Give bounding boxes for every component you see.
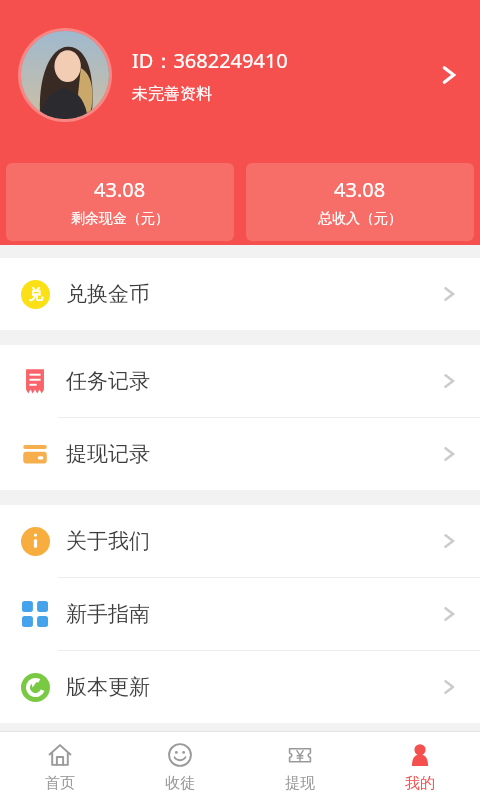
staticText: 关于我们 <box>66 528 438 554</box>
staticText: 提现记录 <box>66 441 438 467</box>
button[interactable]: 43.08 <box>246 163 474 241</box>
button[interactable]: ID：3682249410 <box>0 0 480 150</box>
staticText: 任务记录 <box>66 368 438 394</box>
staticText: 新手指南 <box>66 601 438 627</box>
staticText: ID：3682249410 <box>132 47 288 74</box>
button[interactable]: 我的 <box>360 732 480 800</box>
button[interactable]: 提现记录 <box>0 418 480 490</box>
staticText: 兑 <box>29 286 43 304</box>
staticText: 未完善资料 <box>132 84 212 104</box>
staticText: 兑换金币 <box>66 281 438 307</box>
button[interactable]: 收徒 <box>120 732 240 800</box>
button[interactable]: 关于我们 <box>0 505 480 577</box>
staticText: 总收入（元） <box>318 210 402 228</box>
staticText: 首页 <box>45 774 75 793</box>
staticText: 我的 <box>405 774 435 793</box>
button[interactable]: 首页 <box>0 732 120 800</box>
button[interactable]: 提现 <box>240 732 360 800</box>
button[interactable]: 版本更新 <box>0 651 480 723</box>
button[interactable]: 新手指南 <box>0 578 480 650</box>
button[interactable]: 兑 <box>0 258 480 330</box>
staticText: 版本更新 <box>66 674 438 700</box>
staticText: 43.08 <box>94 176 146 203</box>
button[interactable]: 43.08 <box>6 163 234 241</box>
button[interactable]: 任务记录 <box>0 345 480 417</box>
staticText: 提现 <box>285 774 315 793</box>
staticText: 剩余现金（元） <box>71 210 169 228</box>
staticText: 43.08 <box>334 176 386 203</box>
staticText: 收徒 <box>165 774 195 793</box>
